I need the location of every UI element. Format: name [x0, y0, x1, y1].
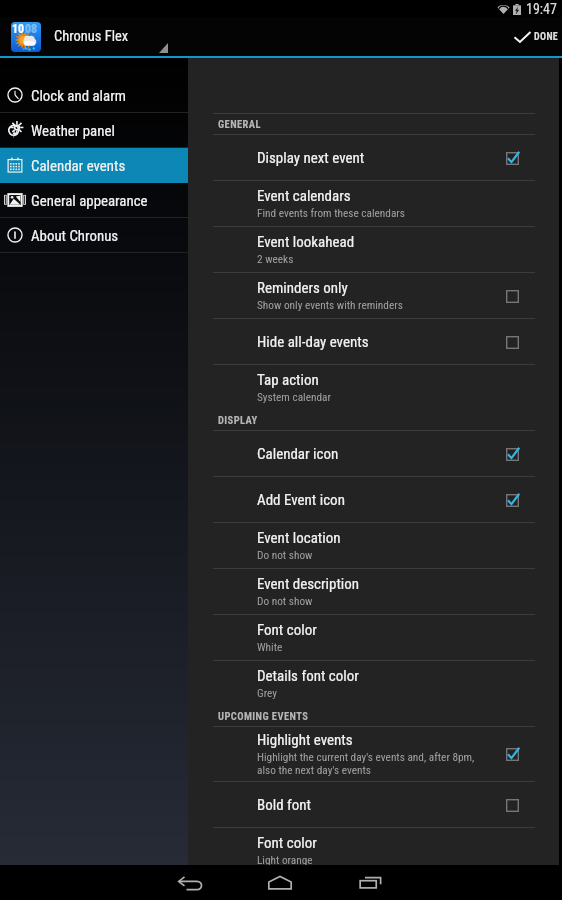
button[interactable]: Highlight events [188, 727, 559, 781]
button[interactable]: Details font color [188, 661, 559, 706]
staticText: DISPLAY [218, 414, 258, 426]
staticText: Chronus Flex [54, 28, 129, 45]
staticText: Grey [257, 687, 277, 700]
button[interactable]: Hide all-day events checkbox [502, 332, 522, 352]
staticText: Weather panel [31, 122, 115, 139]
staticText: 2 weeks [257, 253, 294, 266]
button[interactable]: About Chronus [0, 218, 188, 252]
button[interactable]: Calendar icon checkbox [502, 444, 522, 464]
staticText: Font color [257, 621, 317, 639]
staticText: General appearance [31, 192, 148, 209]
button[interactable]: Weather panel [0, 113, 188, 147]
button[interactable]: Add Event icon [188, 477, 559, 522]
staticText: UPCOMING EVENTS [218, 710, 309, 722]
staticText: Highlight the current day's events and, … [257, 751, 475, 777]
button[interactable]: Back [159, 865, 221, 900]
button[interactable]: Event location [188, 523, 559, 568]
button[interactable]: Event lookahead [188, 227, 559, 272]
button[interactable]: Reminders only checkbox [502, 286, 522, 306]
staticText: Event calendars [257, 187, 351, 205]
button[interactable]: Add Event icon checkbox [502, 490, 522, 510]
staticText: DONE [534, 31, 559, 43]
button[interactable]: Tap action [188, 365, 559, 410]
staticText: Event location [257, 529, 341, 547]
staticText: Tap action [257, 371, 319, 389]
button[interactable]: DONE [504, 17, 562, 56]
staticText: Font color [257, 834, 317, 852]
button[interactable]: Font color [188, 828, 559, 865]
staticText: 08 [25, 22, 38, 36]
button[interactable]: Display next event checkbox [502, 148, 522, 168]
button[interactable]: Hide all-day events [188, 319, 559, 364]
staticText: Event description [257, 575, 360, 593]
button[interactable]: Event calendars [188, 181, 559, 226]
staticText: Display next event [257, 149, 365, 167]
button[interactable]: Highlight events checkbox [502, 744, 522, 764]
staticText: Show only events with reminders [257, 299, 403, 312]
button[interactable]: General appearance [0, 183, 188, 217]
button[interactable]: Home [249, 865, 311, 900]
staticText: Clock and alarm [31, 87, 126, 104]
button[interactable]: Bold font [188, 782, 559, 827]
staticText: White [257, 641, 283, 654]
staticText: Find events from these calendars [257, 207, 405, 220]
button[interactable]: Calendar icon [188, 431, 559, 476]
staticText: Event lookahead [257, 233, 355, 251]
button[interactable]: Recent apps [339, 865, 401, 900]
staticText: Calendar events [31, 157, 126, 174]
button[interactable]: Font color [188, 615, 559, 660]
staticText: Calendar icon [257, 445, 339, 463]
staticText: System calendar [257, 391, 331, 404]
staticText: Reminders only [257, 279, 348, 297]
staticText: 10 [12, 22, 25, 36]
staticText: Do not show [257, 595, 313, 608]
button[interactable]: Bold font checkbox [502, 795, 522, 815]
staticText: About Chronus [31, 227, 119, 244]
button[interactable]: Event description [188, 569, 559, 614]
button[interactable]: Display next event [188, 135, 559, 180]
staticText: Add Event icon [257, 491, 345, 509]
staticText: Hide all-day events [257, 333, 369, 351]
staticText: Highlight events [257, 731, 353, 749]
button[interactable]: Calendar events [0, 148, 188, 182]
button[interactable]: Reminders only [188, 273, 559, 318]
button[interactable]: Clock and alarm [0, 78, 188, 112]
staticText: GENERAL [218, 118, 261, 130]
staticText: Details font color [257, 667, 359, 685]
staticText: Light orange [257, 854, 313, 865]
staticText: Bold font [257, 796, 312, 814]
staticText: Do not show [257, 549, 313, 562]
staticText: 19:47 [526, 1, 557, 17]
